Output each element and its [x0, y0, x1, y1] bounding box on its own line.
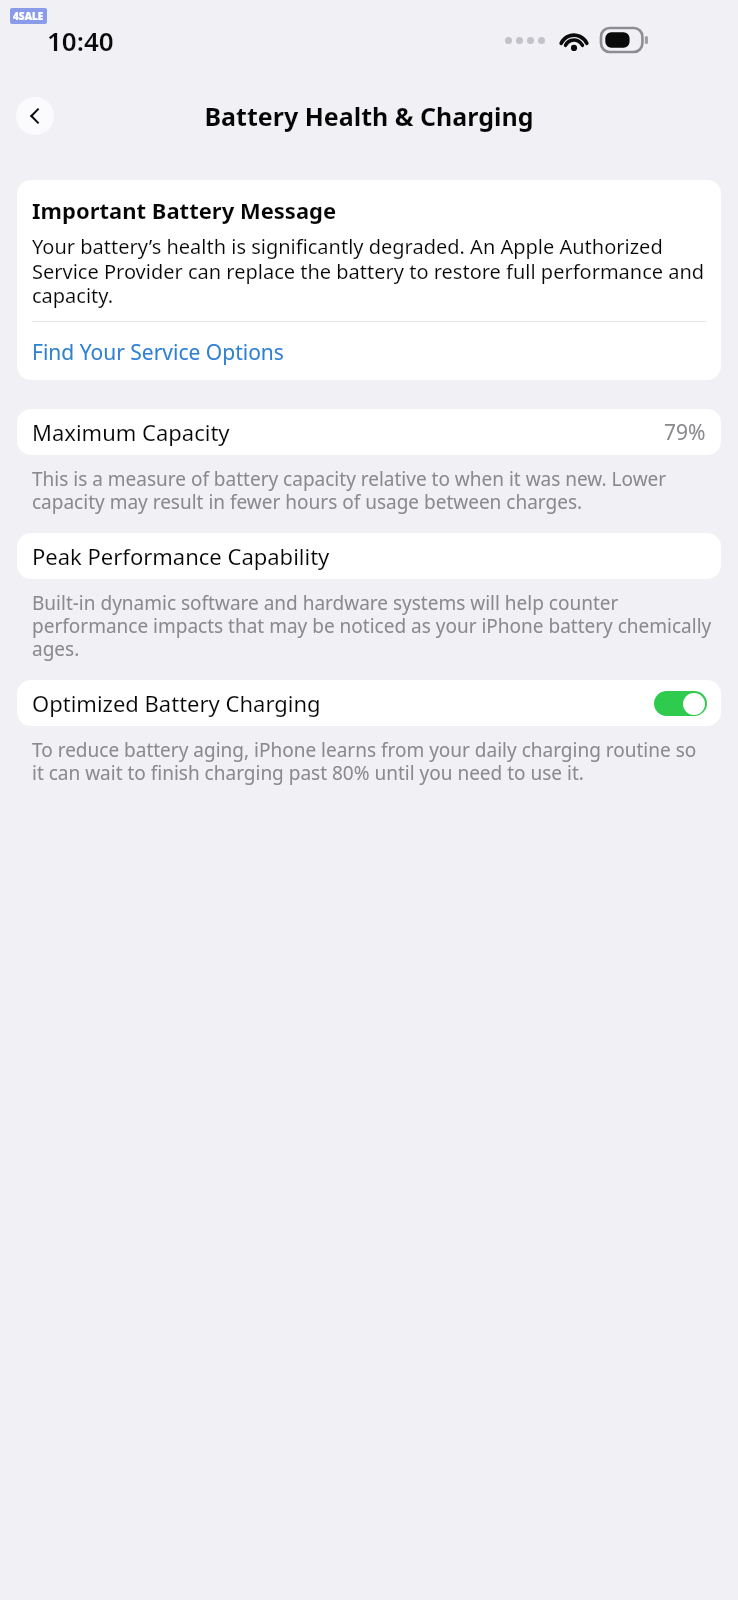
staticText: Your battery’s health is significantly d…	[32, 233, 706, 309]
staticText: To reduce battery aging, iPhone learns f…	[32, 737, 712, 786]
staticText: 10:40	[47, 23, 114, 58]
staticText: Peak Performance Capability	[32, 541, 330, 571]
staticText: Find Your Service Options	[32, 338, 284, 367]
staticText: This is a measure of battery capacity re…	[32, 466, 712, 515]
button[interactable]: Optimized Battery Charging	[17, 680, 721, 726]
button[interactable]: Back	[16, 97, 54, 135]
staticText: Optimized Battery Charging	[32, 688, 321, 718]
staticText: Important Battery Message	[32, 195, 337, 225]
staticText: Maximum Capacity	[32, 417, 230, 447]
staticText: Built-in dynamic software and hardware s…	[32, 590, 712, 662]
button[interactable]: Maximum Capacity	[17, 409, 721, 455]
button[interactable]: Peak Performance Capability	[17, 533, 721, 579]
button[interactable]: Optimized Battery Charging toggle, on	[654, 691, 707, 716]
staticText: 4SALE	[13, 9, 44, 23]
button[interactable]: Find Your Service Options	[32, 336, 706, 369]
staticText: Battery Health & Charging	[204, 99, 534, 133]
staticText: 79%	[664, 418, 706, 447]
